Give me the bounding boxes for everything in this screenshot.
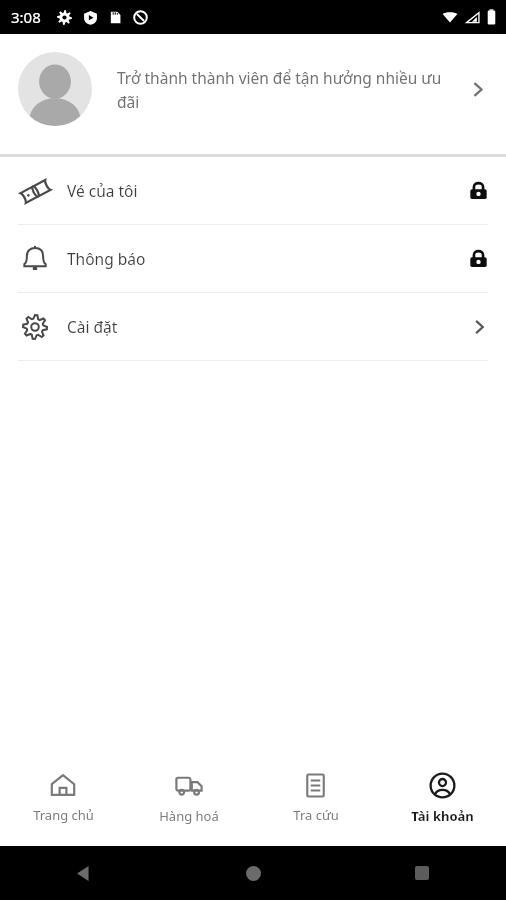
staticText: 3:08: [11, 7, 41, 27]
staticText: Tra cứu: [293, 806, 339, 824]
staticText: Thông báo: [67, 248, 469, 269]
other: Open membership: [463, 75, 491, 103]
button[interactable]: Home: [232, 852, 274, 894]
staticText: Cài đặt: [67, 316, 470, 337]
button[interactable]: Hàng hoá: [126, 750, 252, 846]
button[interactable]: Trở thành thành viên để tận hưởng nhiều …: [0, 34, 506, 144]
button[interactable]: Tra cứu: [252, 750, 379, 846]
button[interactable]: Cài đặt: [0, 293, 506, 360]
staticText: Trang chủ: [33, 806, 94, 824]
staticText: Trở thành thành viên để tận hưởng nhiều …: [117, 67, 457, 112]
button[interactable]: Trang chủ: [0, 750, 126, 846]
button[interactable]: Thông báo: [0, 225, 506, 292]
staticText: Hàng hoá: [159, 807, 219, 825]
button[interactable]: Tài khoản: [379, 750, 506, 846]
staticText: Tài khoản: [411, 807, 474, 825]
staticText: Vé của tôi: [67, 180, 469, 201]
button[interactable]: Vé của tôi: [0, 157, 506, 224]
button[interactable]: Recent apps: [401, 852, 443, 894]
button[interactable]: Back: [63, 852, 105, 894]
